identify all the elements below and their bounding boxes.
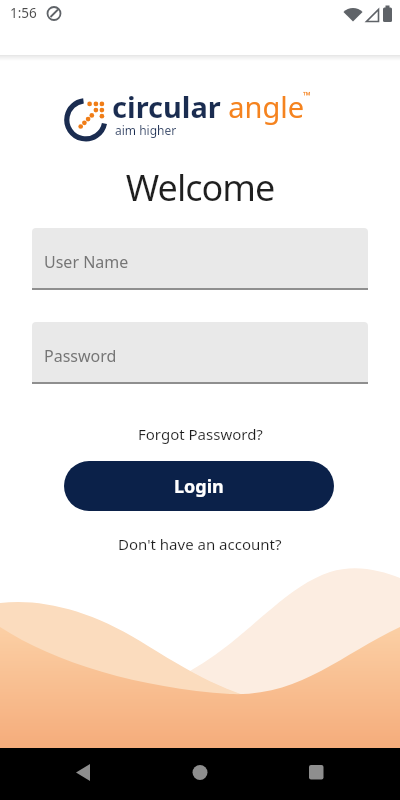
button[interactable] <box>134 748 267 800</box>
staticText: circular angle <box>112 87 305 126</box>
staticText: 1:56 <box>10 4 37 22</box>
staticText: aim higher <box>115 122 177 138</box>
button[interactable]: Login <box>64 461 334 511</box>
button[interactable]: Don't have an account? <box>118 534 282 554</box>
staticText: Password <box>44 345 117 367</box>
button[interactable] <box>267 748 400 800</box>
button[interactable] <box>0 748 134 800</box>
button[interactable]: Forgot Password? <box>138 424 263 444</box>
staticText: User Name <box>44 251 129 273</box>
staticText: Welcome <box>0 163 400 212</box>
button[interactable]: User Name <box>32 228 368 290</box>
staticText: ™ <box>303 88 311 102</box>
button[interactable]: Password <box>32 322 368 384</box>
staticText: Login <box>174 474 224 499</box>
